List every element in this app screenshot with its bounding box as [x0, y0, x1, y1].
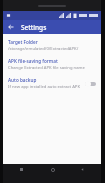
staticText: Settings — [21, 23, 47, 32]
button[interactable]: Home — [48, 165, 57, 174]
button[interactable]: Auto backup — [3, 74, 101, 93]
staticText: Target Folder — [8, 39, 38, 45]
button[interactable]: Auto backup toggle — [84, 79, 97, 88]
staticText: If new app installed auto extract APK — [8, 84, 80, 90]
button[interactable]: APK file-saving format — [3, 55, 101, 74]
staticText: Change Extracted APK file saving name — [8, 65, 85, 71]
staticText: Auto backup — [8, 77, 37, 83]
button[interactable]: Recents — [17, 165, 26, 174]
staticText: /storage/emulated/0/ExtractedAPK/ — [8, 46, 79, 52]
button[interactable]: Target Folder — [3, 36, 101, 55]
staticText: APK file-saving format — [8, 58, 58, 64]
button[interactable]: Back — [6, 22, 16, 32]
button[interactable]: Back — [78, 165, 87, 174]
